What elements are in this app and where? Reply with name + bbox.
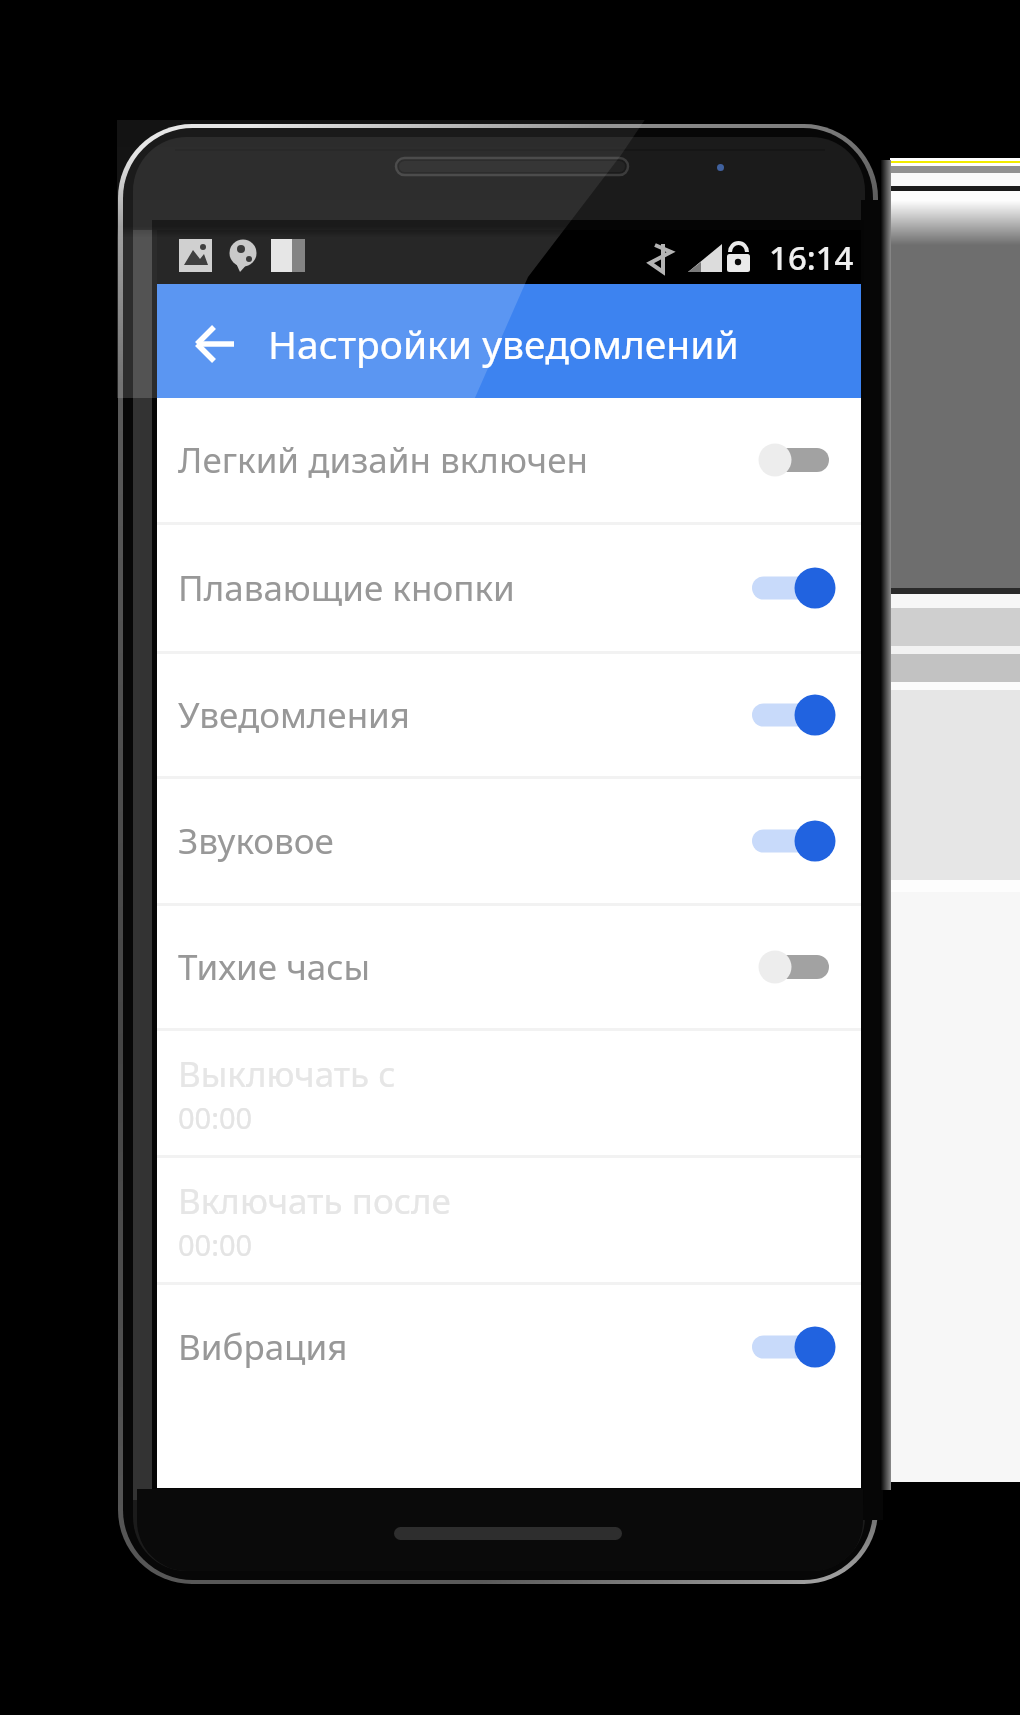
staticText: Плавающие кнопки [178, 564, 515, 612]
button[interactable]: Плавающие кнопки [157, 525, 861, 651]
staticText: Звуковое [178, 817, 334, 865]
button[interactable]: Легкий дизайн включен [157, 398, 861, 522]
staticText: 00:00 [178, 1098, 253, 1137]
staticText: Включать после [178, 1177, 451, 1225]
staticText: Выключать с [178, 1050, 396, 1098]
button[interactable]: Выключать с [157, 1031, 861, 1155]
staticText: 00:00 [178, 1225, 253, 1264]
button[interactable]: Вибрация [157, 1285, 861, 1409]
staticText: Легкий дизайн включен [178, 436, 588, 484]
staticText: Настройки уведомлений [268, 317, 739, 370]
button[interactable]: Звуковое [157, 779, 861, 903]
button[interactable]: Уведомления [157, 654, 861, 776]
button[interactable]: Включать после [157, 1158, 861, 1282]
button[interactable]: Тихие часы [157, 906, 861, 1028]
staticText: Вибрация [178, 1323, 348, 1371]
staticText: Тихие часы [178, 943, 371, 991]
button[interactable]: Back [186, 313, 248, 375]
staticText: 16:14 [769, 235, 854, 280]
staticText: Уведомления [178, 691, 411, 739]
